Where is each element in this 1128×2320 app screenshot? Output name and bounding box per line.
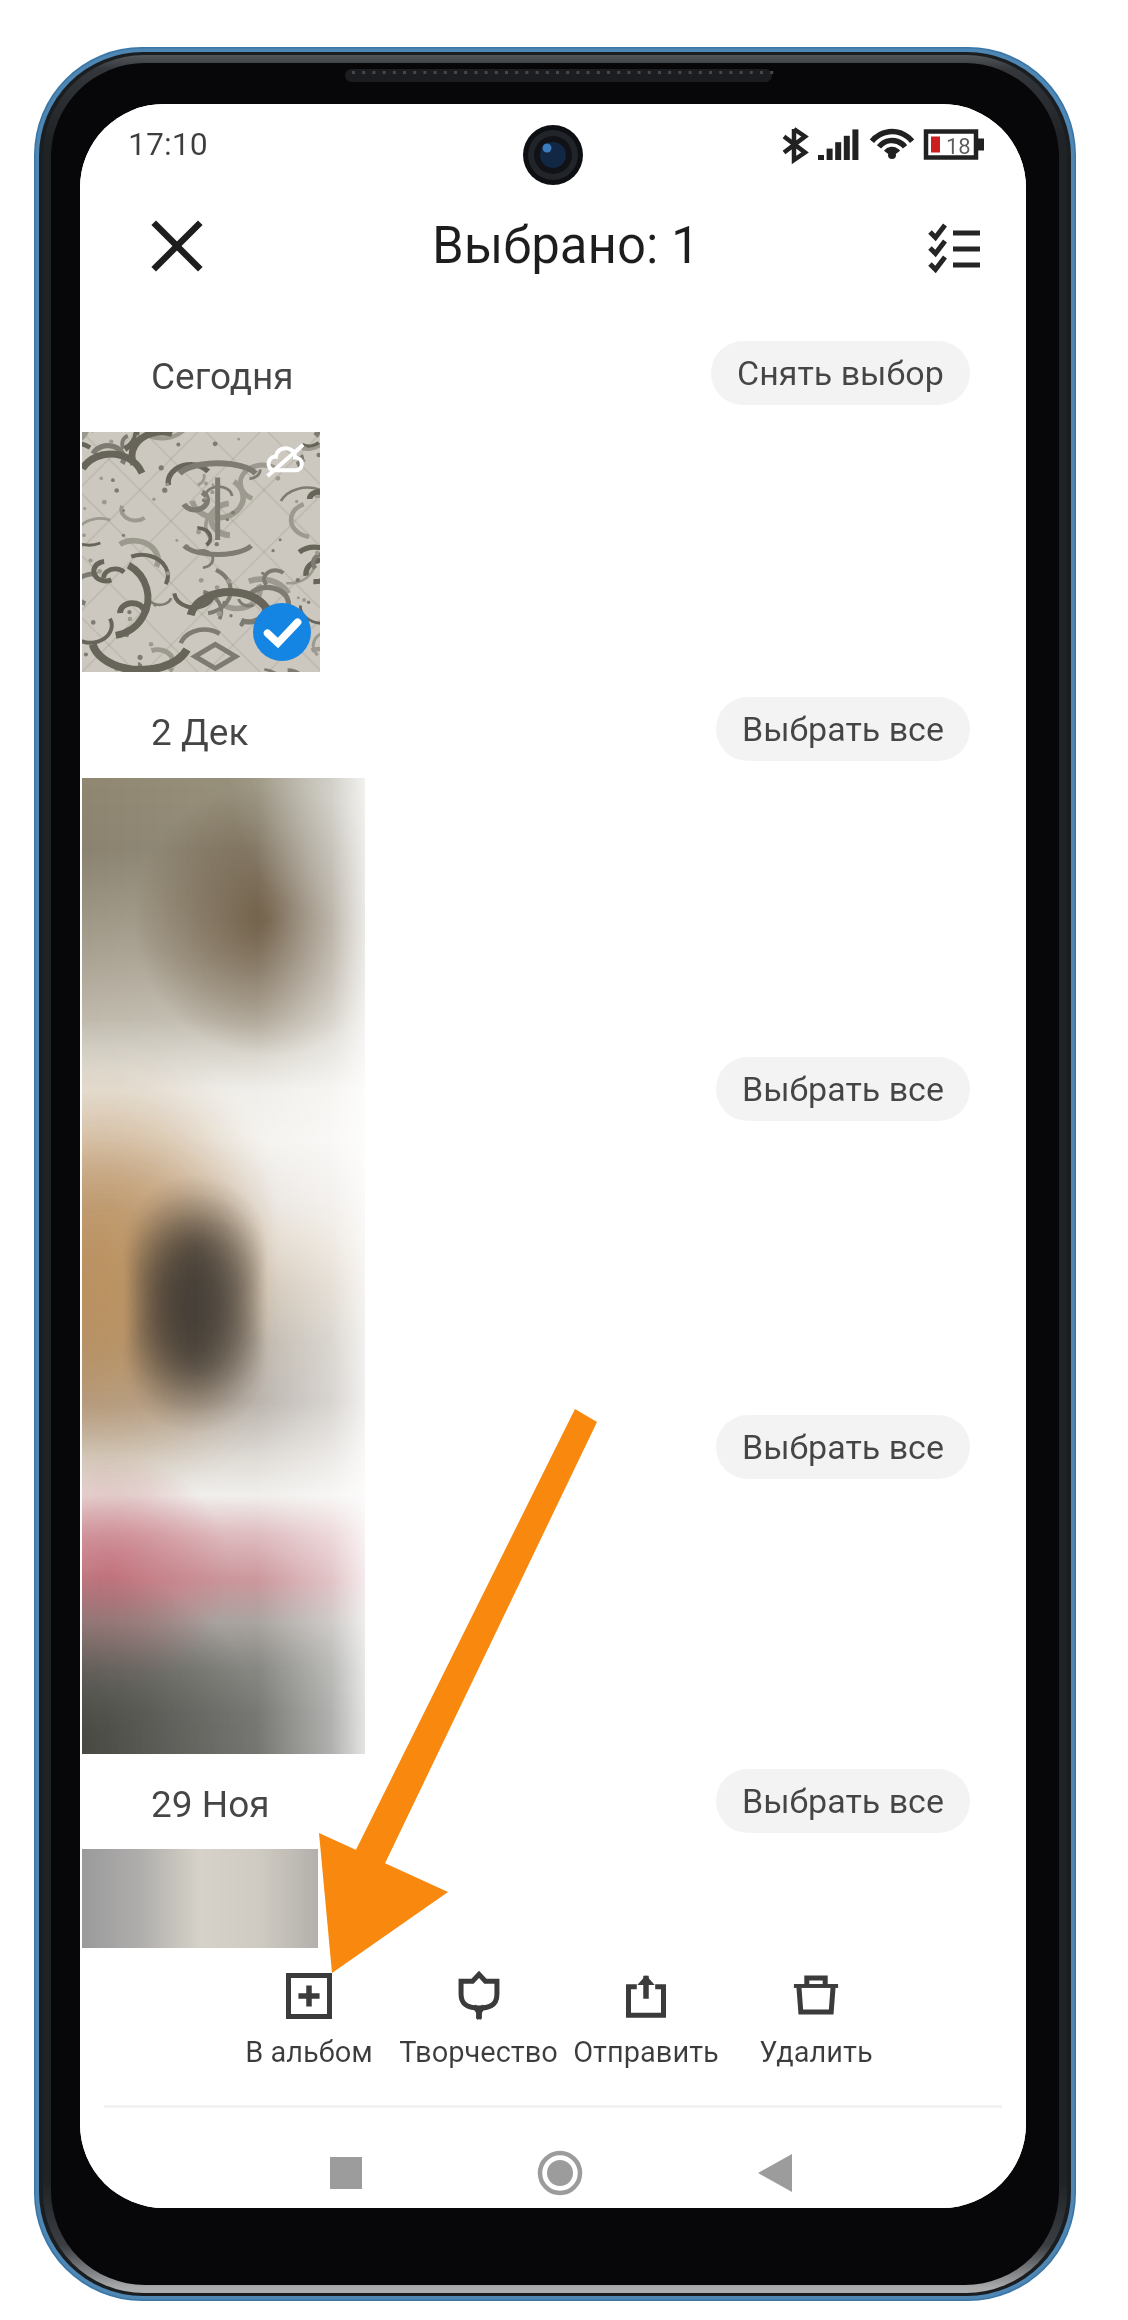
staticText: Сегодня [151, 355, 294, 398]
button[interactable]: Снять выбор [711, 341, 970, 405]
staticText: Удалить [759, 2035, 873, 2069]
button[interactable]: Назад [735, 2133, 815, 2208]
button[interactable]: Выбрать все [716, 697, 970, 761]
button[interactable]: Отправить [551, 1959, 741, 2093]
staticText: Снять выбор [737, 353, 944, 393]
staticText: Творчество [399, 2035, 558, 2069]
button[interactable]: Выбрать все [716, 1057, 970, 1121]
staticText: 2 Дек [151, 711, 249, 754]
button[interactable]: Выбрать все [716, 1769, 970, 1833]
staticText: 18 [946, 134, 971, 160]
button[interactable] [82, 1849, 318, 1948]
button[interactable]: Главный экран [520, 2133, 600, 2208]
button[interactable] [82, 778, 365, 1754]
button[interactable]: Закрыть [139, 208, 215, 284]
staticText: Отправить [573, 2035, 719, 2069]
button[interactable]: В альбом [214, 1959, 404, 2093]
button[interactable]: Удалить [721, 1959, 911, 2093]
button[interactable]: Режим выбора [917, 207, 993, 283]
staticText: 29 Ноя [151, 1783, 270, 1826]
button[interactable]: Творчество [383, 1959, 573, 2093]
staticText: 17:10 [128, 125, 208, 163]
staticText: Выбрано: 1 [432, 216, 700, 276]
staticText: Выбрать все [742, 1781, 944, 1821]
button[interactable] [82, 432, 320, 672]
staticText: Выбрать все [742, 709, 944, 749]
staticText: Выбрать все [742, 1069, 944, 1109]
button[interactable]: Выбрать все [716, 1415, 970, 1479]
staticText: Выбрать все [742, 1427, 944, 1467]
staticText: В альбом [245, 2035, 373, 2069]
button[interactable]: Недавние приложения [306, 2133, 386, 2208]
